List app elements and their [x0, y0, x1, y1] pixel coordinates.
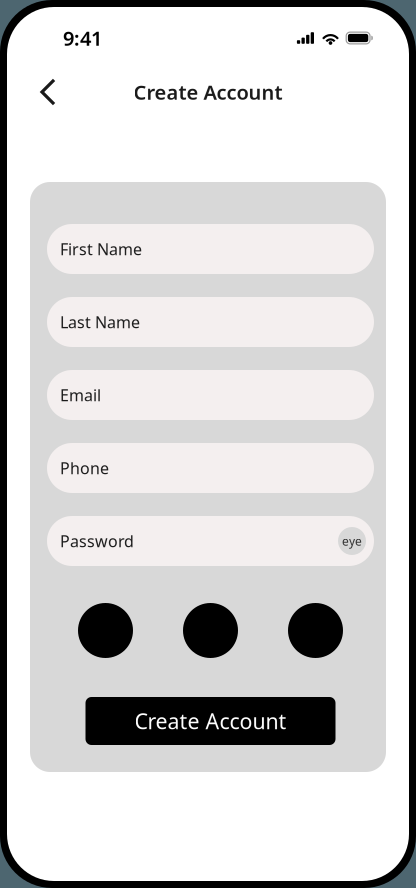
- button[interactable]: Sign up with Google: [183, 603, 238, 658]
- button[interactable]: Password: [47, 516, 374, 566]
- staticText: Password: [60, 530, 134, 552]
- button[interactable]: Last Name: [47, 297, 374, 347]
- staticText: Last Name: [60, 311, 140, 333]
- staticText: First Name: [60, 238, 142, 260]
- staticText: Create Account: [133, 79, 282, 105]
- button[interactable]: Sign up with Facebook: [288, 603, 343, 658]
- staticText: Email: [60, 384, 101, 406]
- staticText: 9:41: [63, 25, 102, 51]
- button[interactable]: Phone: [47, 443, 374, 493]
- button[interactable]: Create Account: [85, 697, 335, 745]
- staticText: Phone: [60, 457, 109, 479]
- button[interactable]: Back: [31, 69, 65, 115]
- staticText: eye: [342, 533, 362, 549]
- button[interactable]: First Name: [47, 224, 374, 274]
- staticText: Create Account: [134, 707, 286, 735]
- button[interactable]: Email: [47, 370, 374, 420]
- button[interactable]: Sign up with Apple: [78, 603, 133, 658]
